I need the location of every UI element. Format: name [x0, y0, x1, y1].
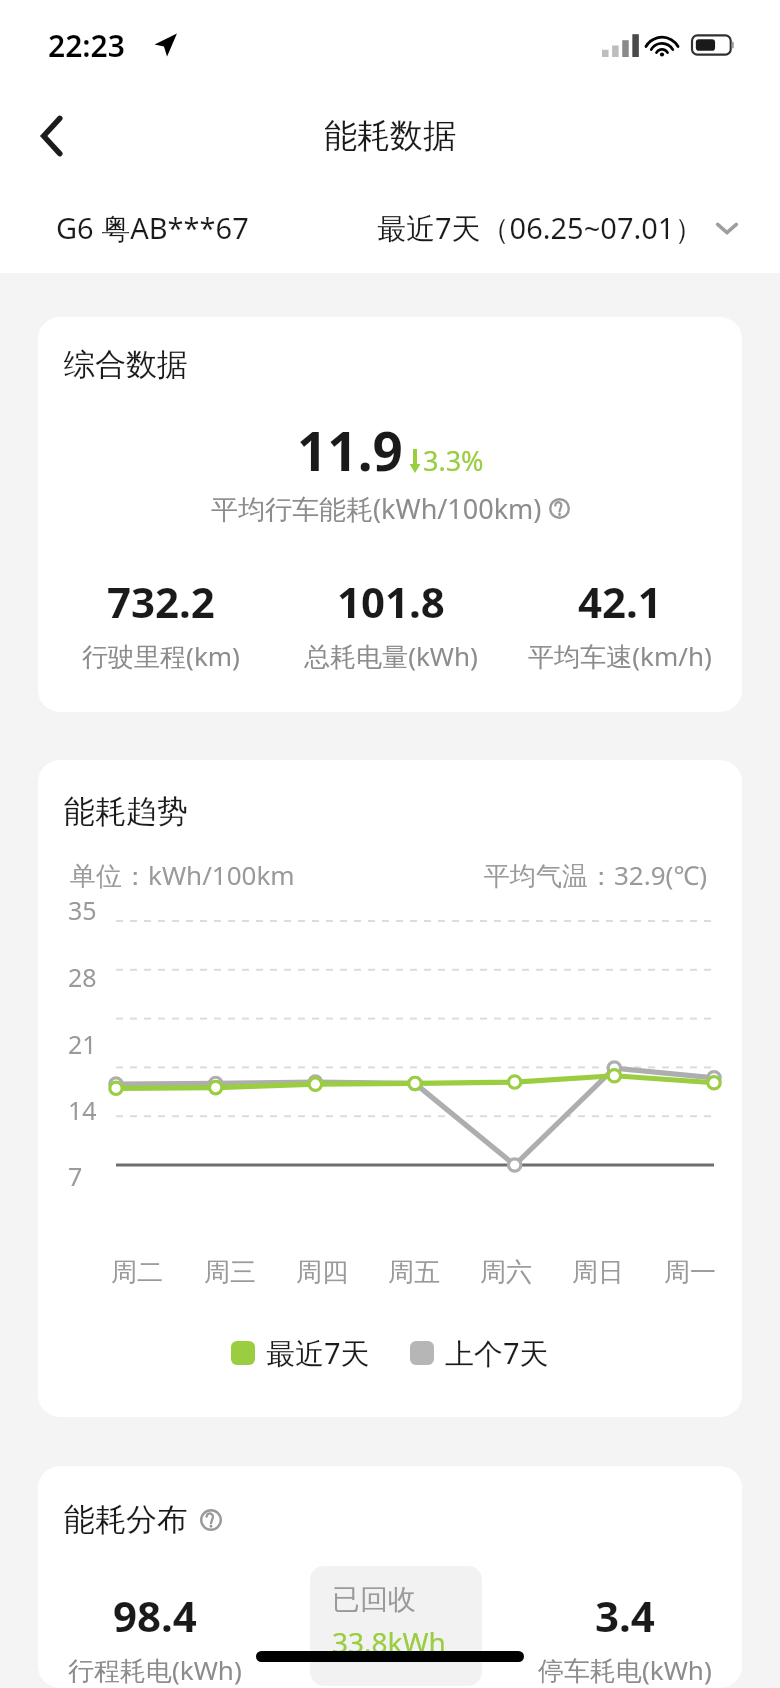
- staticText: 732.2: [107, 573, 215, 630]
- staticText: 单位：kWh/100km: [70, 857, 295, 893]
- staticText: 22:23: [48, 25, 125, 66]
- button[interactable]: 最近7天（06.25~07.01）: [377, 208, 740, 248]
- staticText: 行程耗电(kWh): [68, 1652, 242, 1688]
- staticText: 周三: [204, 1256, 256, 1289]
- staticText: 平均气温：32.9(℃): [484, 857, 708, 893]
- staticText: 总耗电量(kWh): [304, 638, 478, 674]
- staticText: 平均车速(km/h): [528, 638, 712, 674]
- staticText: 3.4: [595, 1587, 655, 1644]
- staticText: 综合数据: [64, 345, 188, 384]
- staticText: 11.9: [297, 414, 403, 486]
- staticText: 已回收: [332, 1582, 416, 1617]
- staticText: G6 粤AB***67: [56, 208, 249, 248]
- staticText: 上个7天: [445, 1333, 549, 1373]
- staticText: 周日: [572, 1256, 624, 1289]
- staticText: 周六: [480, 1256, 532, 1289]
- staticText: 能耗数据: [324, 115, 456, 157]
- staticText: 能耗趋势: [64, 792, 188, 831]
- button[interactable]: 最近7天: [231, 1333, 370, 1373]
- staticText: 最近7天: [266, 1333, 370, 1373]
- staticText: 21: [68, 1027, 97, 1061]
- staticText: 3.3%: [423, 442, 484, 479]
- staticText: 周二: [111, 1256, 163, 1289]
- staticText: 行驶里程(km): [82, 638, 240, 674]
- staticText: 35: [68, 893, 97, 927]
- staticText: 周一: [664, 1256, 716, 1289]
- staticText: 101.8: [337, 573, 445, 630]
- staticText: 7: [68, 1159, 83, 1193]
- button[interactable]: 上个7天: [410, 1333, 549, 1373]
- staticText: 周五: [388, 1256, 440, 1289]
- staticText: 33.8kWh: [332, 1623, 446, 1661]
- staticText: 28: [68, 960, 97, 994]
- staticText: 42.1: [578, 573, 662, 630]
- button[interactable]: Back: [0, 90, 104, 182]
- staticText: 最近7天（06.25~07.01）: [377, 208, 704, 248]
- staticText: 98.4: [113, 1587, 197, 1644]
- staticText: 停车耗电(kWh): [538, 1652, 712, 1688]
- staticText: 周四: [296, 1256, 348, 1289]
- staticText: 平均行车能耗(kWh/100km): [211, 490, 542, 527]
- staticText: 能耗分布: [64, 1500, 188, 1539]
- staticText: 14: [68, 1093, 97, 1127]
